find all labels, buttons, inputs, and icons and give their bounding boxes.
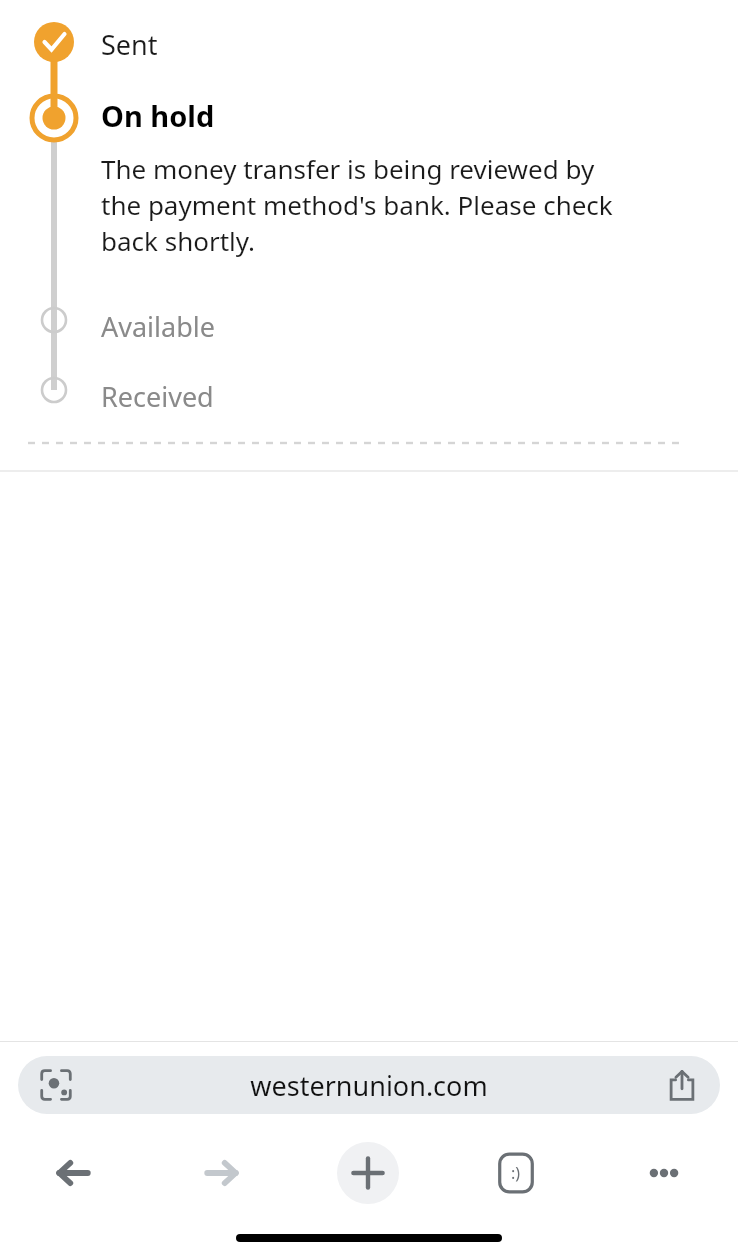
button[interactable]: Tabs xyxy=(442,1134,590,1212)
button[interactable]: Visual lookup xyxy=(18,1056,720,1114)
button[interactable]: More xyxy=(590,1134,738,1212)
staticText: The money transfer is being reviewed by … xyxy=(101,151,621,259)
button[interactable]: Sent xyxy=(101,26,158,63)
staticText: :) xyxy=(511,1162,521,1184)
button[interactable]: Visual lookup xyxy=(34,1063,78,1107)
button[interactable]: Back xyxy=(0,1134,147,1212)
staticText: Received xyxy=(101,378,214,415)
button[interactable]: Forward xyxy=(147,1134,294,1212)
button[interactable]: New tab xyxy=(294,1134,442,1212)
staticText: Available xyxy=(101,308,215,345)
staticText: Sent xyxy=(101,26,158,63)
staticText: On hold xyxy=(101,96,215,135)
staticText: westernunion.com xyxy=(250,1067,488,1104)
button[interactable]: On hold xyxy=(101,96,215,135)
button[interactable]: Received xyxy=(101,378,214,415)
button[interactable]: Share xyxy=(660,1063,704,1107)
button[interactable]: Available xyxy=(101,308,215,345)
